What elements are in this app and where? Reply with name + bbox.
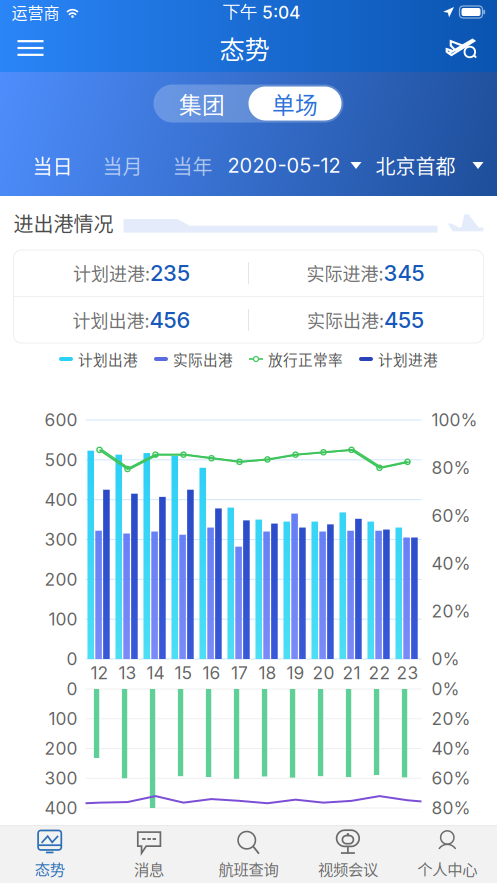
staticText: 计划进港 [378, 348, 438, 370]
staticText: 0 [66, 678, 77, 699]
staticText: 40% [431, 738, 470, 759]
staticText: 13 [118, 662, 136, 683]
staticText: 计划进港: [73, 260, 150, 286]
staticText: 300 [44, 529, 77, 550]
staticText: 100 [48, 609, 77, 630]
staticText: 消息 [134, 857, 164, 880]
staticText: 集团 [179, 87, 225, 120]
staticText: 14 [146, 662, 164, 683]
staticText: 40% [431, 553, 470, 574]
staticText: 当月 [102, 151, 142, 180]
staticText: 实际进港: [306, 260, 383, 286]
staticText: 400 [44, 797, 77, 818]
button[interactable]: 当月 [87, 148, 157, 182]
button[interactable]: 态势 [0, 826, 99, 883]
staticText: 北京首都 [375, 151, 455, 180]
button[interactable]: 当年 [157, 148, 227, 182]
button[interactable]: 2020-05-12 [227, 148, 361, 182]
staticText: 20 [312, 662, 334, 683]
button[interactable]: 消息 [99, 826, 199, 883]
staticText: 单场 [272, 87, 318, 120]
staticText: 100% [431, 409, 477, 430]
staticText: 80% [431, 457, 470, 478]
staticText: 15 [174, 662, 192, 683]
staticText: 21 [342, 662, 360, 683]
staticText: 600 [44, 409, 77, 430]
staticText: 0% [431, 678, 459, 699]
button[interactable]: 北京首都 [361, 148, 483, 182]
staticText: 运营商 [11, 0, 59, 24]
staticText: 345 [383, 260, 424, 286]
staticText: 0 [66, 648, 77, 669]
staticText: 60% [431, 768, 470, 789]
button[interactable]: 视频会议 [298, 826, 398, 883]
staticText: 12 [90, 662, 108, 683]
staticText: 下午 5:04 [223, 1, 300, 23]
staticText: 17 [231, 662, 248, 683]
staticText: 当年 [172, 151, 212, 180]
staticText: 20% [431, 601, 470, 622]
staticText: 个人中心 [417, 857, 477, 880]
button[interactable]: 单场 [248, 86, 341, 120]
staticText: 实际出港: [307, 307, 384, 333]
staticText: 500 [44, 449, 77, 470]
staticText: 19 [286, 662, 304, 683]
staticText: 0% [431, 648, 459, 669]
staticText: 态势 [219, 30, 269, 66]
staticText: 计划出港: [72, 307, 149, 333]
button[interactable]: 航班查询 [199, 826, 298, 883]
staticText: 200 [44, 738, 77, 759]
staticText: 2020-05-12 [227, 153, 340, 178]
button[interactable]: 当日 [17, 148, 87, 182]
staticText: 200 [44, 569, 77, 590]
button[interactable]: 集团 [155, 86, 248, 120]
button[interactable]: 菜单 [5, 29, 55, 67]
staticText: 456 [149, 307, 190, 333]
staticText: 22 [368, 662, 390, 683]
staticText: 455 [384, 307, 424, 333]
staticText: 300 [44, 768, 77, 789]
staticText: 400 [44, 489, 77, 510]
staticText: 当日 [32, 151, 72, 180]
staticText: 60% [431, 505, 470, 526]
staticText: 进出港情况 [13, 208, 113, 237]
button[interactable]: 个人中心 [398, 826, 497, 883]
staticText: 16 [202, 662, 220, 683]
button[interactable]: 航班搜索 [433, 28, 491, 68]
staticText: 80% [431, 797, 470, 818]
staticText: 视频会议 [318, 857, 378, 880]
staticText: 23 [396, 662, 418, 683]
staticText: 态势 [35, 857, 65, 880]
staticText: 实际出港 [173, 348, 233, 370]
staticText: 235 [150, 260, 190, 286]
staticText: 航班查询 [218, 857, 278, 880]
staticText: 18 [258, 662, 276, 683]
staticText: 放行正常率 [268, 348, 343, 370]
staticText: 计划出港 [78, 348, 138, 370]
staticText: 20% [431, 708, 470, 729]
staticText: 100 [48, 708, 77, 729]
